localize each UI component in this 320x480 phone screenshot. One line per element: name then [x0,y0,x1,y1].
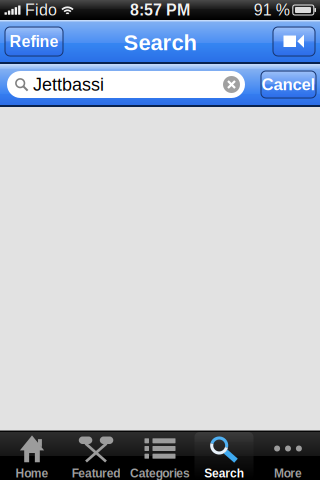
staticText: More [274,467,302,480]
button[interactable]: More [256,432,320,480]
button[interactable]: Video [273,27,315,56]
staticText: Search [204,467,244,480]
staticText: Home [15,467,48,480]
button[interactable]: Search [192,432,256,480]
staticText: Featured [72,467,120,480]
staticText: 91 % [254,1,290,19]
staticText: Fido [25,1,57,19]
staticText: 8:57 PM [130,1,190,19]
staticText: Cancel [261,75,315,94]
button[interactable]: Categories [128,432,192,480]
staticText: Refine [9,33,58,50]
button[interactable]: Refine [5,27,63,56]
staticText: Jettbassi [33,74,104,94]
staticText: Search [123,30,196,55]
button[interactable]: Cancel [261,71,316,98]
button[interactable]: Featured [64,432,128,480]
button[interactable]: Home [0,432,64,480]
staticText: Categories [130,467,190,480]
button[interactable]: Jettbassi [7,71,245,98]
